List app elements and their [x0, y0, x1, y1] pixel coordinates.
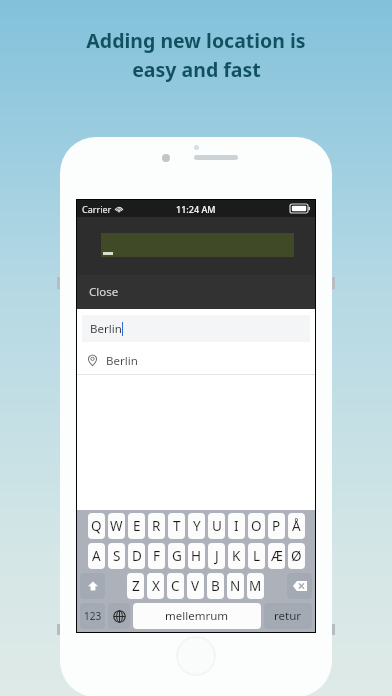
button[interactable]: mellemrum — [133, 603, 261, 629]
staticText: Q — [91, 517, 102, 535]
staticText: Adding new location is — [86, 27, 306, 54]
staticText: Å — [292, 517, 301, 535]
button[interactable]: X — [147, 573, 164, 599]
button[interactable]: I — [228, 513, 245, 539]
button[interactable]: E — [128, 513, 145, 539]
button[interactable]: K — [228, 543, 245, 569]
button[interactable]: Z — [127, 573, 144, 599]
staticText: Z — [132, 577, 140, 595]
button[interactable]: F — [148, 543, 165, 569]
button[interactable]: Ø — [288, 543, 305, 569]
staticText: Berlin — [106, 353, 138, 369]
staticText: C — [171, 577, 180, 595]
staticText: Close — [89, 284, 119, 300]
staticText: Y — [193, 517, 201, 535]
button[interactable]: O — [248, 513, 265, 539]
button[interactable]: G — [168, 543, 185, 569]
staticText: easy and fast — [132, 56, 261, 83]
button[interactable]: Close — [77, 275, 315, 309]
button[interactable]: C — [167, 573, 184, 599]
staticText: Ø — [291, 547, 302, 565]
button[interactable]: U — [208, 513, 225, 539]
staticText: D — [132, 547, 142, 565]
staticText: J — [215, 547, 219, 565]
button[interactable]: Berlin — [82, 315, 310, 342]
button[interactable]: H — [188, 543, 205, 569]
staticText: Carrier — [82, 203, 112, 215]
staticText: Berlin — [90, 321, 122, 337]
button[interactable]: S — [108, 543, 125, 569]
button[interactable]: T — [168, 513, 185, 539]
button[interactable]: V — [187, 573, 204, 599]
button[interactable]: R — [148, 513, 165, 539]
button[interactable]: Berlin — [77, 347, 315, 374]
staticText: M — [249, 577, 262, 595]
staticText: Æ — [271, 547, 283, 565]
staticText: A — [92, 547, 101, 565]
staticText: B — [211, 577, 220, 595]
staticText: F — [153, 547, 161, 565]
staticText: S — [113, 547, 121, 565]
staticText: N — [230, 577, 241, 595]
button[interactable]: A — [88, 543, 105, 569]
staticText: 11:24 AM — [176, 203, 216, 215]
button[interactable]: W — [108, 513, 125, 539]
staticText: K — [232, 547, 241, 565]
staticText: E — [133, 517, 141, 535]
staticText: T — [173, 517, 181, 535]
button[interactable]: L — [248, 543, 265, 569]
button[interactable]: J — [208, 543, 225, 569]
staticText: retur — [274, 608, 302, 624]
staticText: U — [212, 517, 222, 535]
button[interactable]: Q — [88, 513, 105, 539]
staticText: P — [272, 517, 281, 535]
staticText: G — [172, 547, 182, 565]
staticText: W — [110, 517, 123, 535]
staticText: R — [152, 517, 161, 535]
staticText: mellemrum — [165, 608, 229, 624]
button[interactable]: 123 — [80, 603, 105, 629]
button[interactable]: Å — [288, 513, 305, 539]
button[interactable]: N — [227, 573, 244, 599]
staticText: L — [253, 547, 261, 565]
staticText: H — [191, 547, 202, 565]
button[interactable]: M — [247, 573, 264, 599]
button[interactable]: Y — [188, 513, 205, 539]
button[interactable]: P — [268, 513, 285, 539]
button[interactable]: Æ — [268, 543, 285, 569]
staticText: V — [191, 577, 200, 595]
staticText: 123 — [84, 609, 102, 623]
button[interactable]: B — [207, 573, 224, 599]
staticText: O — [251, 517, 262, 535]
button[interactable]: retur — [264, 603, 312, 629]
staticText: X — [152, 577, 160, 595]
staticText: I — [234, 517, 239, 535]
button[interactable]: Shift — [80, 573, 105, 599]
button[interactable]: Switch keyboard — [108, 603, 130, 629]
button[interactable]: D — [128, 543, 145, 569]
button[interactable]: Backspace — [287, 573, 312, 599]
